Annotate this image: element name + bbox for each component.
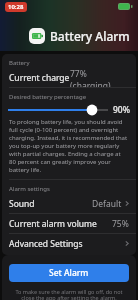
- button[interactable]: Advanced Settings: [2, 234, 136, 253]
- staticText: To prolong battery life, you should avoi…: [9, 118, 129, 174]
- staticText: Set Alarm: [49, 267, 89, 279]
- staticText: Current alarm volume: [9, 218, 97, 230]
- staticText: Alarm settings: [9, 185, 50, 193]
- staticText: 10:28: [8, 3, 24, 11]
- staticText: Battery Alarm: [50, 28, 130, 44]
- staticText: 90%: [113, 104, 130, 116]
- button[interactable]: Current charge: [2, 68, 136, 87]
- staticText: 75%: [112, 218, 129, 230]
- staticText: Desired battery percentage: [9, 93, 87, 101]
- staticText: To make sure the alarm will go off, do n…: [9, 288, 129, 300]
- button[interactable]: Current alarm volume: [2, 214, 136, 233]
- button[interactable]: Sound: [2, 194, 136, 213]
- staticText: Default: [92, 198, 122, 210]
- staticText: Sound: [9, 198, 35, 210]
- staticText: Advanced Settings: [9, 238, 83, 250]
- staticText: Current charge: [9, 72, 70, 84]
- button[interactable]: Set Alarm: [9, 264, 129, 282]
- staticText: 77% (charging): [70, 68, 129, 87]
- staticText: Battery: [9, 59, 30, 67]
